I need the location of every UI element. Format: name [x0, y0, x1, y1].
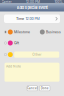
staticText: Milestone	[14, 30, 30, 34]
staticText: Cancel	[27, 87, 37, 90]
staticText: 12:00 PM	[26, 17, 40, 21]
staticText: Done	[41, 87, 49, 90]
staticText: Add Special Event	[16, 5, 47, 10]
button[interactable]: Gift	[4, 40, 19, 45]
staticText: Gift	[14, 41, 19, 45]
button[interactable]: Business	[40, 29, 61, 34]
button[interactable]: Milestone	[4, 29, 30, 34]
staticText: Carrier	[1, 0, 11, 4]
button[interactable]: Add Note	[4, 63, 59, 82]
button[interactable]: Time	[4, 14, 60, 23]
button[interactable]: Cancel	[27, 86, 37, 91]
button[interactable]: Done	[39, 86, 50, 91]
staticText: 12:00 PM	[26, 0, 40, 4]
staticText: Time	[16, 17, 24, 21]
staticText: 100%	[54, 0, 62, 4]
staticText: Add Note	[6, 64, 21, 68]
staticText: Other	[32, 53, 41, 57]
staticText: Business	[46, 30, 61, 34]
button[interactable]: Other	[14, 51, 59, 58]
